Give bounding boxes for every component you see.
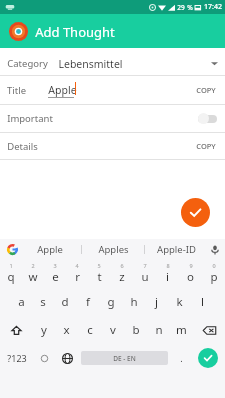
staticText: . [180, 352, 183, 364]
staticText: x [63, 322, 70, 338]
staticText: Details [7, 140, 38, 153]
button[interactable]: h [122, 288, 145, 316]
staticText: p [210, 269, 218, 285]
staticText: y [41, 322, 47, 338]
staticText: l [201, 294, 204, 310]
staticText: 2 [31, 262, 35, 269]
button[interactable]: Category [0, 52, 225, 75]
button[interactable]: 6 [110, 260, 133, 288]
button[interactable]: 8 [156, 260, 179, 288]
button[interactable]: l [191, 288, 214, 316]
staticText: u [141, 269, 149, 285]
button[interactable]: 4 [66, 260, 88, 288]
button[interactable]: 3 [44, 260, 66, 288]
staticText: m [176, 322, 187, 338]
button[interactable]: d [54, 288, 76, 316]
staticText: COPY [196, 85, 216, 95]
button[interactable]: a [10, 288, 32, 316]
staticText: Lebensmittel [58, 57, 123, 71]
button[interactable]: v [101, 316, 124, 344]
staticText: 6 [120, 262, 124, 269]
staticText: Apples [98, 243, 129, 256]
staticText: h [130, 294, 138, 310]
button[interactable]: k [168, 288, 191, 316]
staticText: COPY [196, 141, 216, 151]
button[interactable]: Apple [19, 239, 81, 260]
staticText: % [187, 3, 193, 12]
button[interactable]: Apples [82, 239, 144, 260]
staticText: i [166, 269, 169, 285]
button[interactable]: Apple-ID [145, 239, 207, 260]
staticText: o [187, 269, 194, 285]
staticText: 17:42 [204, 2, 222, 12]
staticText: f [86, 294, 90, 310]
staticText: Apple [37, 243, 63, 256]
button[interactable]: c [78, 316, 101, 344]
staticText: s [40, 294, 46, 310]
button[interactable]: 0 [202, 260, 225, 288]
button[interactable]: ?123 [0, 344, 33, 372]
staticText: z [119, 269, 125, 285]
button[interactable]: m [170, 316, 193, 344]
button[interactable]: y [32, 316, 55, 344]
staticText: 3 [53, 262, 57, 269]
staticText: 9 [189, 262, 193, 269]
button[interactable]: Voice input [207, 242, 222, 257]
staticText: r [75, 269, 80, 285]
staticText: 4 [75, 262, 79, 269]
staticText: n [155, 322, 163, 338]
staticText: g [107, 294, 115, 310]
button[interactable]: x [55, 316, 78, 344]
staticText: a [18, 294, 25, 310]
staticText: q [7, 269, 15, 285]
button[interactable]: 1 [0, 260, 22, 288]
staticText: ?123 [7, 352, 27, 364]
button[interactable]: 2 [22, 260, 44, 288]
staticText: 29 [177, 3, 185, 12]
button[interactable]: Space [81, 351, 168, 365]
staticText: 5 [97, 262, 101, 269]
button[interactable]: Change language [56, 344, 78, 372]
button[interactable]: 7 [133, 260, 156, 288]
staticText: t [97, 269, 102, 285]
staticText: Category [7, 57, 48, 70]
staticText: Apple-ID [157, 243, 196, 256]
button[interactable]: Google search [6, 243, 19, 256]
staticText: 0 [212, 262, 216, 269]
button[interactable]: g [99, 288, 122, 316]
button[interactable]: Important [0, 105, 225, 132]
button[interactable]: b [124, 316, 147, 344]
button[interactable]: j [145, 288, 168, 316]
button[interactable]: Enter [198, 348, 218, 368]
staticText: c [87, 322, 93, 338]
staticText: j [155, 294, 158, 310]
staticText: v [110, 322, 116, 338]
button[interactable]: 5 [88, 260, 110, 288]
button[interactable]: COPY [194, 83, 218, 97]
button[interactable]: s [32, 288, 54, 316]
button[interactable]: . [171, 344, 191, 372]
button[interactable]: Backspace [193, 316, 225, 344]
staticText: Important [7, 112, 53, 125]
button[interactable]: Shift [0, 316, 32, 344]
button[interactable]: COPY [194, 139, 218, 153]
button[interactable]: 9 [179, 260, 202, 288]
staticText: Apple [48, 83, 77, 97]
staticText: 1 [9, 262, 13, 269]
button[interactable]: f [76, 288, 99, 316]
staticText: w [28, 269, 38, 285]
button[interactable]: Save thought [181, 198, 210, 227]
staticText: Title [7, 84, 26, 97]
staticText: d [61, 294, 69, 310]
button[interactable]: Emoji [33, 344, 56, 372]
staticText: DE - EN [113, 354, 136, 363]
button[interactable]: n [147, 316, 170, 344]
staticText: Add Thought [35, 23, 115, 41]
staticText: 7 [143, 262, 147, 269]
staticText: b [132, 322, 140, 338]
staticText: k [176, 294, 183, 310]
staticText: 8 [166, 262, 170, 269]
staticText: e [52, 269, 59, 285]
